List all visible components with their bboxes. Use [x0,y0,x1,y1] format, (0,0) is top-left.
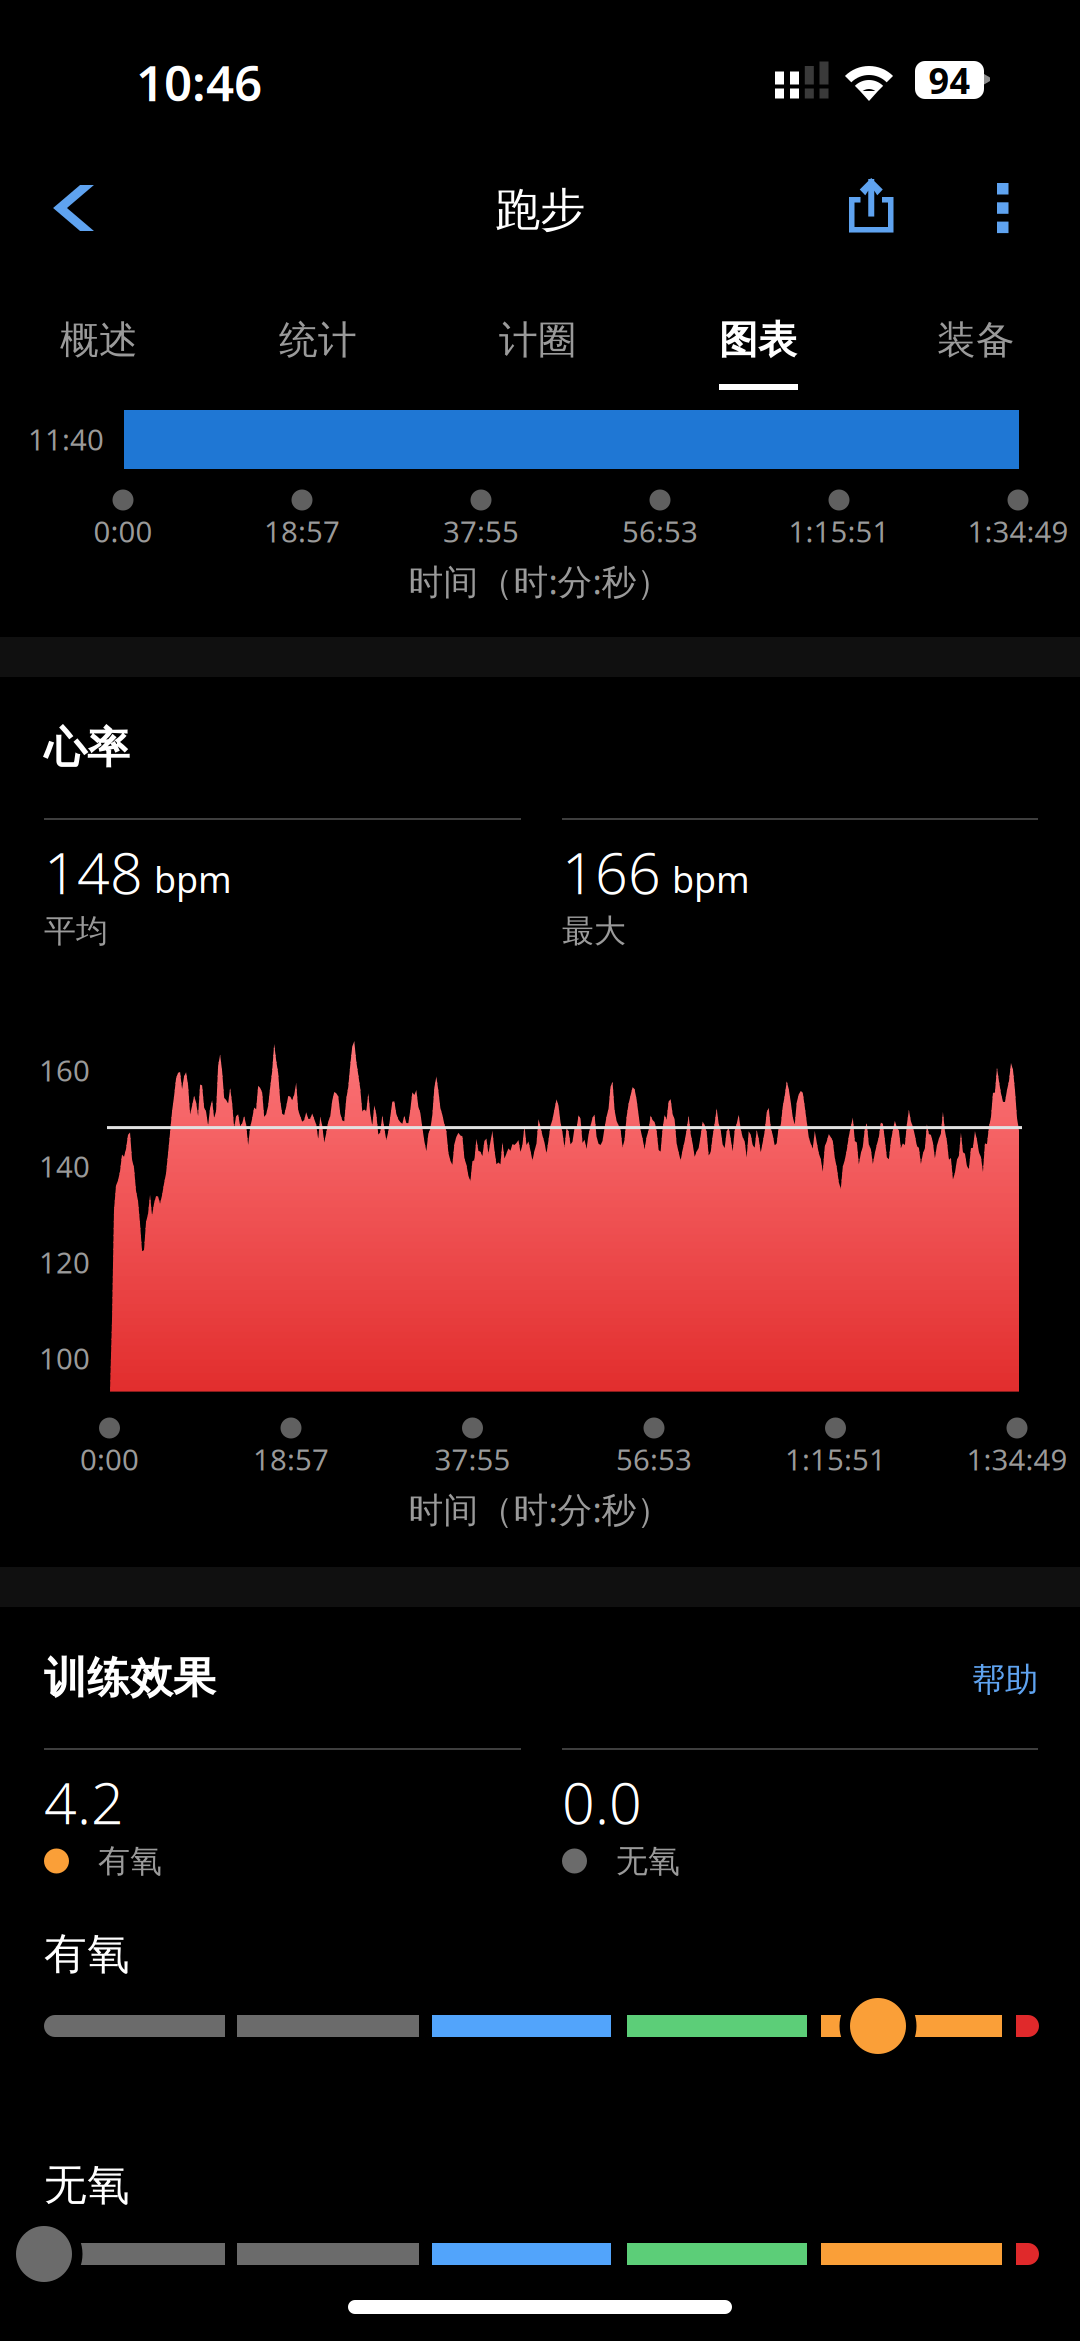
staticText: 1:15:51 [785,1439,886,1478]
staticText: 无氧 [44,2159,130,2211]
staticText: 56:53 [616,1439,692,1478]
staticText: 0.0 [562,1764,642,1840]
staticText: 148 [44,834,143,910]
staticText: bpm [154,855,232,903]
staticText: 0:00 [93,511,152,550]
staticText: 100 [39,1338,90,1377]
staticText: 10:46 [136,49,262,115]
button[interactable]: 计圈 [432,290,644,390]
button[interactable]: Share [806,150,936,270]
staticText: 帮助 [972,1659,1038,1700]
staticText: bpm [672,855,750,903]
staticText: 时间（时:分:秒） [408,1486,671,1532]
staticText: 训练效果 [44,1652,216,1704]
staticText: 11:40 [28,419,104,458]
staticText: 56:53 [622,511,698,550]
staticText: 166 [562,834,661,910]
button[interactable]: More options [946,150,1080,270]
button[interactable]: 统计 [212,290,424,390]
staticText: 有氧 [98,1841,162,1881]
staticText: 有氧 [44,1928,130,1980]
staticText: 94 [928,56,970,104]
staticText: 140 [39,1146,90,1185]
staticText: 装备 [937,316,1015,364]
staticText: 18:57 [253,1439,329,1478]
staticText: 统计 [279,316,357,364]
staticText: 120 [39,1242,90,1281]
staticText: 心率 [44,722,130,774]
staticText: 0:00 [80,1439,139,1478]
button[interactable]: 概述 [0,290,205,390]
staticText: 37:55 [434,1439,510,1478]
staticText: 时间（时:分:秒） [408,558,671,604]
staticText: 平均 [44,911,108,951]
staticText: 1:34:49 [967,511,1068,550]
staticText: 1:15:51 [788,511,889,550]
staticText: 概述 [60,316,138,364]
staticText: 图表 [719,316,797,364]
button[interactable]: Back [0,150,140,270]
staticText: 无氧 [616,1841,680,1881]
staticText: 37:55 [443,511,519,550]
staticText: 18:57 [264,511,340,550]
button[interactable]: 图表 [652,290,864,390]
staticText: 1:34:49 [966,1439,1067,1478]
staticText: 最大 [562,911,626,951]
staticText: 计圈 [499,316,577,364]
staticText: 4.2 [44,1764,124,1840]
button[interactable]: 装备 [870,290,1080,390]
staticText: 跑步 [495,182,585,238]
staticText: 160 [39,1050,90,1089]
button[interactable]: 帮助 [860,1657,1038,1703]
